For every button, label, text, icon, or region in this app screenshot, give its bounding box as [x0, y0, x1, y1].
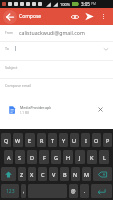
button[interactable]: Period — [80, 184, 89, 198]
staticText: U — [72, 137, 77, 144]
button[interactable]: L — [99, 150, 109, 164]
button[interactable]: W — [13, 133, 23, 147]
button[interactable]: H — [63, 150, 73, 164]
button[interactable]: B — [60, 167, 69, 181]
staticText: Q — [4, 137, 9, 144]
button[interactable]: At sign — [69, 184, 78, 198]
button[interactable]: Expand recipients — [101, 44, 110, 53]
button[interactable]: From — [0, 25, 113, 42]
button[interactable]: G — [51, 150, 61, 164]
button[interactable]: T — [48, 133, 57, 147]
button[interactable]: Attach file — [68, 8, 82, 25]
button[interactable]: X — [28, 167, 36, 181]
staticText: . — [84, 188, 86, 195]
staticText: B — [63, 171, 67, 178]
staticText: V — [52, 171, 56, 178]
staticText: P — [106, 137, 110, 144]
staticText: Y — [62, 137, 66, 144]
button[interactable]: Q — [1, 133, 11, 147]
button[interactable]: Shift — [1, 167, 16, 181]
button[interactable]: Send — [82, 8, 97, 25]
staticText: Subject — [5, 65, 18, 70]
button[interactable]: Subject — [0, 61, 113, 79]
button[interactable]: N — [71, 167, 80, 181]
staticText: R — [40, 137, 44, 144]
staticText: K — [90, 154, 94, 161]
staticText: I — [85, 137, 87, 144]
staticText: , — [23, 188, 25, 195]
button[interactable]: Navigate up — [0, 8, 19, 25]
button[interactable]: Comma — [21, 184, 26, 198]
staticText: @ — [71, 188, 76, 195]
staticText: A — [7, 154, 11, 161]
button[interactable]: Compose email — [0, 79, 113, 96]
button[interactable]: A — [4, 150, 13, 164]
button[interactable]: Y — [59, 133, 68, 147]
button[interactable]: S — [15, 150, 25, 164]
staticText: To — [5, 46, 9, 51]
button[interactable]: 123 — [1, 184, 19, 198]
staticText: X — [30, 171, 34, 178]
button[interactable]: C — [38, 167, 47, 181]
staticText: T — [51, 137, 55, 144]
staticText: 100% — [60, 2, 71, 7]
staticText: D — [30, 154, 35, 161]
button[interactable]: Enter — [91, 184, 112, 198]
button[interactable]: E — [25, 133, 35, 147]
staticText: 123 — [6, 188, 15, 195]
button[interactable]: O — [92, 133, 101, 147]
button[interactable]: J — [75, 150, 85, 164]
button[interactable]: F — [39, 150, 49, 164]
staticText: E — [28, 137, 32, 144]
staticText: S — [18, 154, 22, 161]
staticText: PM — [91, 2, 96, 6]
staticText: M — [84, 171, 89, 178]
staticText: F — [43, 154, 46, 161]
button[interactable]: I — [81, 133, 90, 147]
button[interactable]: D — [27, 150, 37, 164]
button[interactable]: Backspace — [93, 167, 112, 181]
staticText: From — [5, 31, 13, 35]
button[interactable]: V — [49, 167, 58, 181]
staticText: C — [41, 171, 45, 178]
button[interactable]: More options — [97, 8, 110, 25]
staticText: 3:05 — [81, 1, 90, 7]
staticText: O — [94, 137, 99, 144]
staticText: J — [79, 154, 81, 161]
staticText: MediaProvider.apk — [20, 105, 52, 110]
button[interactable]: Z — [18, 167, 26, 181]
button[interactable]: To — [0, 42, 113, 61]
button[interactable]: P — [103, 133, 112, 147]
button[interactable]: M — [82, 167, 91, 181]
staticText: Z — [20, 171, 24, 178]
button[interactable]: U — [70, 133, 79, 147]
staticText: 1.1 MB — [20, 111, 30, 115]
staticText: Compose email — [5, 83, 32, 88]
staticText: H — [66, 154, 71, 161]
staticText: calistuackwudi@gmail.com — [19, 29, 85, 36]
button[interactable]: K — [87, 150, 97, 164]
button[interactable]: MediaProvider.apk — [5, 101, 108, 118]
staticText: L — [103, 154, 106, 161]
staticText: Compose — [19, 13, 42, 20]
button[interactable]: Remove attachment — [95, 104, 106, 115]
staticText: G — [54, 154, 59, 161]
button[interactable]: R — [37, 133, 46, 147]
staticText: W — [15, 137, 21, 144]
staticText: N — [73, 171, 78, 178]
